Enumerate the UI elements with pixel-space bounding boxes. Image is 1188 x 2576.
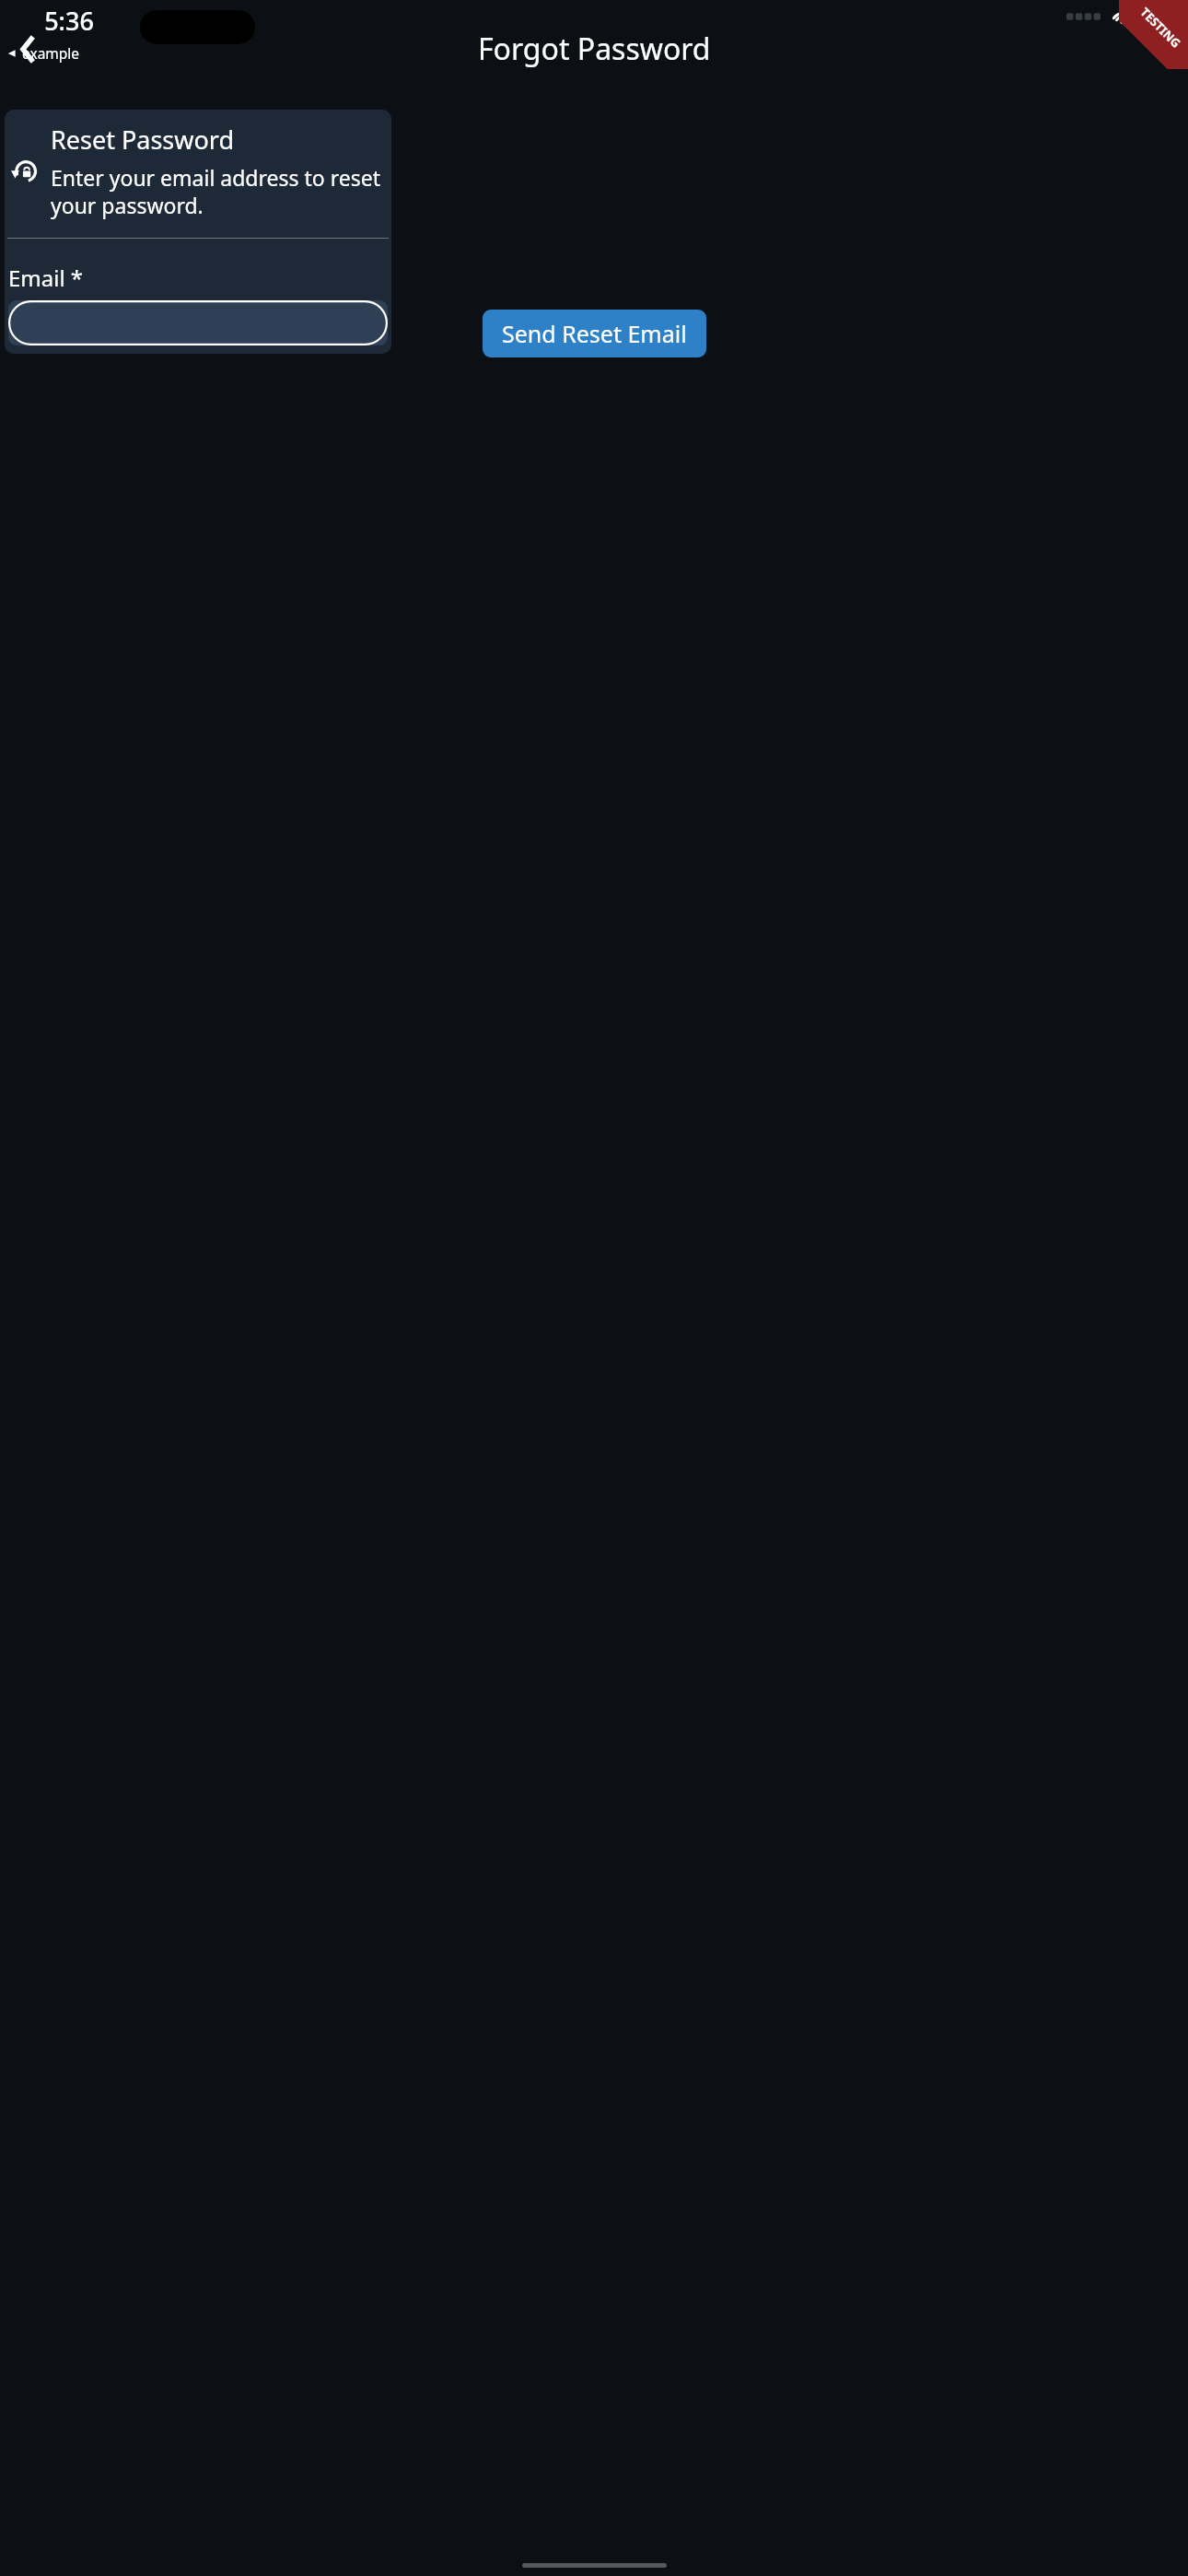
- staticText: Reset Password: [51, 123, 235, 157]
- button[interactable]: Send Reset Email: [483, 310, 706, 357]
- staticText: Forgot Password: [478, 29, 711, 69]
- button[interactable]: example: [6, 43, 80, 63]
- button[interactable]: Back: [5, 28, 52, 70]
- button[interactable]: Email input: [8, 300, 388, 345]
- staticText: 5:36: [0, 4, 138, 38]
- staticText: Send Reset Email: [502, 318, 687, 349]
- staticText: Email *: [8, 263, 84, 293]
- staticText: Enter your email address to reset your p…: [51, 163, 382, 220]
- staticText: example: [22, 43, 80, 63]
- staticText: TESTING: [1137, 4, 1185, 51]
